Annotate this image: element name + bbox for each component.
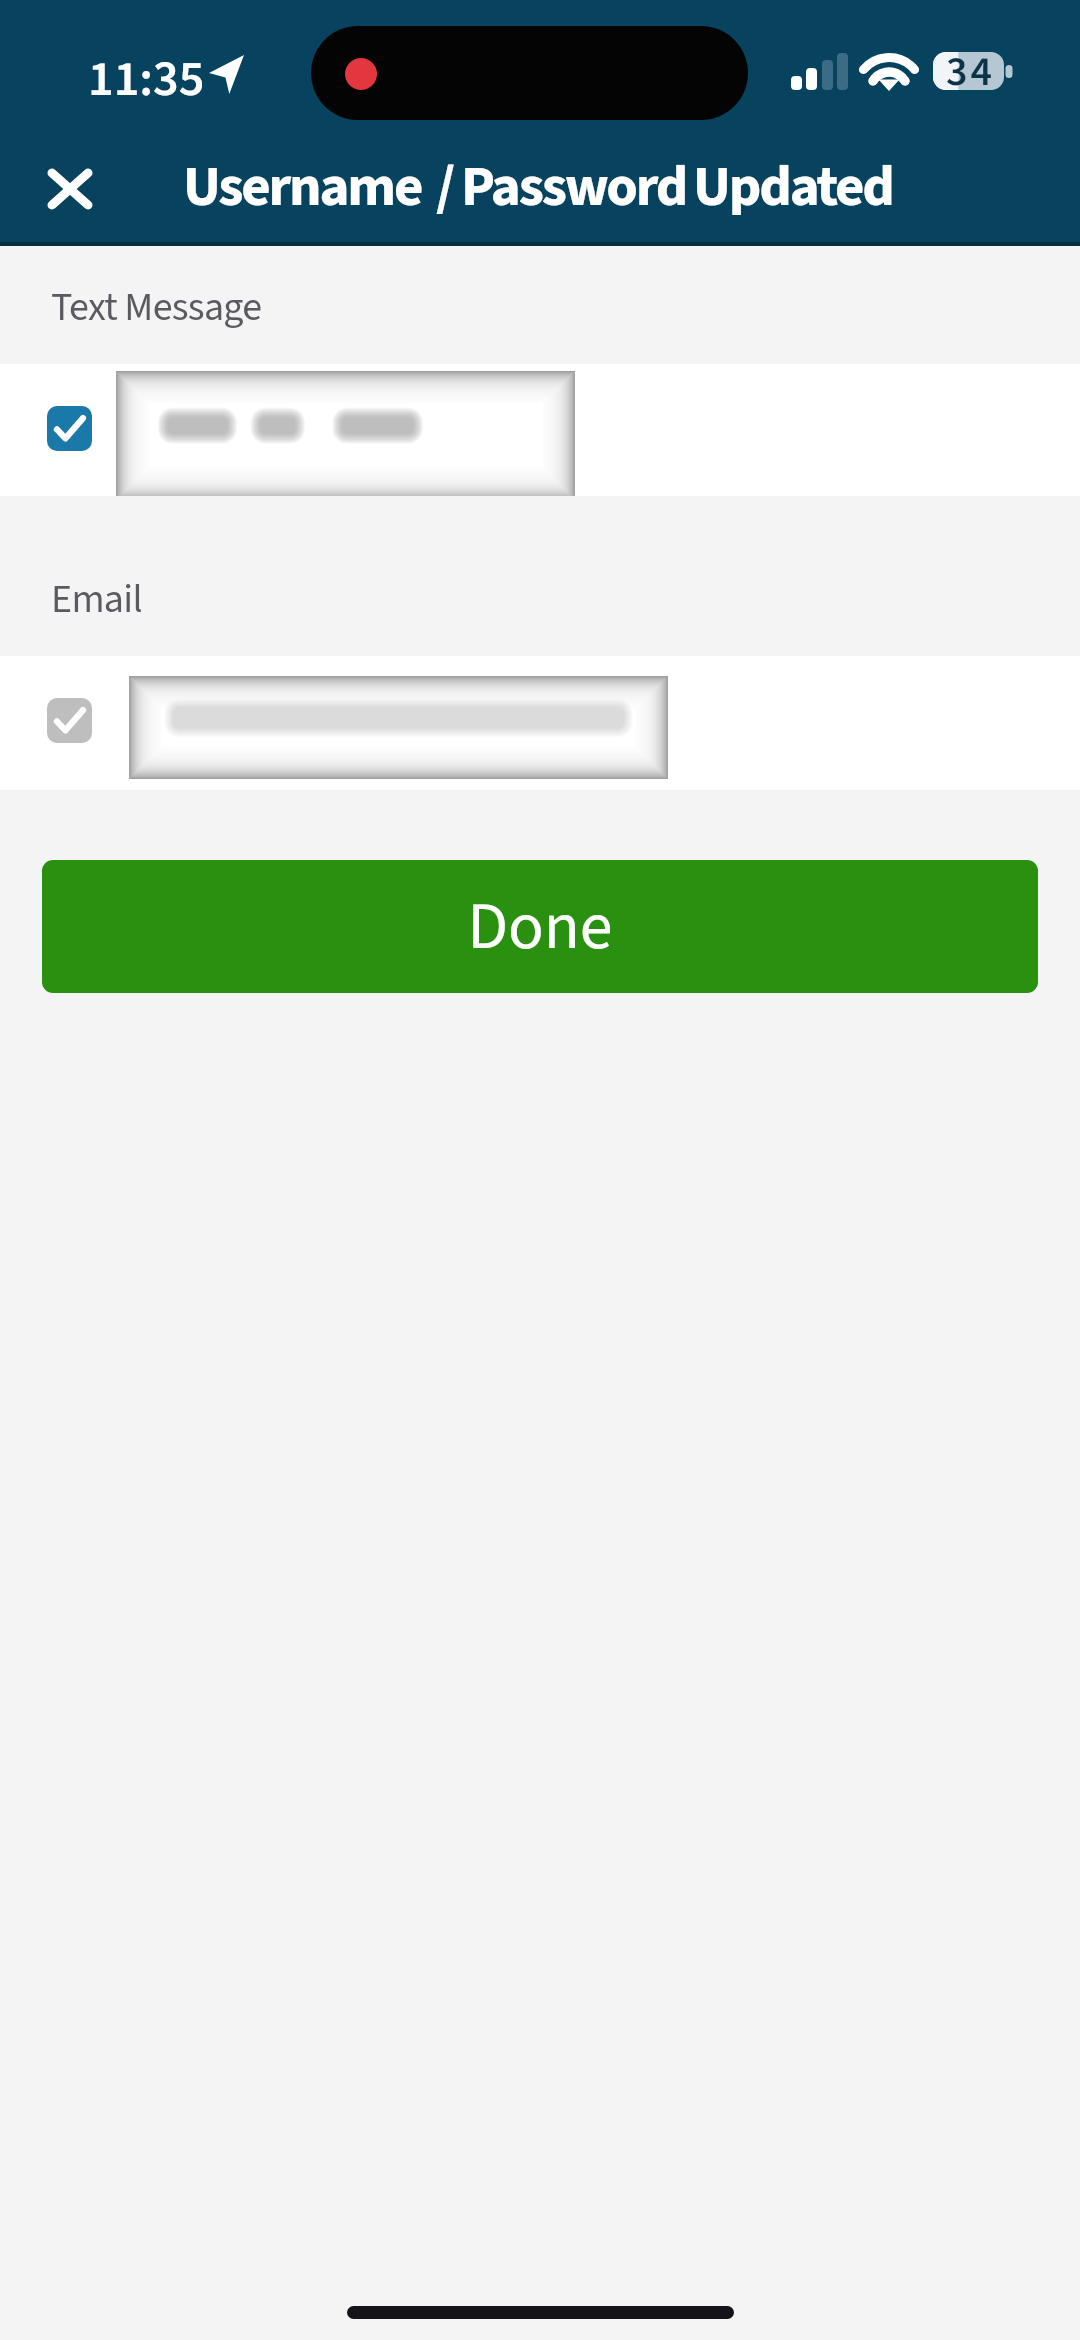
staticText: Password — [461, 147, 687, 228]
staticText: Username — [183, 147, 422, 228]
staticText: 34 — [946, 42, 996, 102]
button[interactable] — [0, 656, 1080, 790]
staticText: 11:35 — [88, 44, 205, 115]
staticText: Done — [467, 880, 613, 974]
staticText: Email — [51, 571, 142, 628]
staticText: Text Message — [51, 279, 262, 336]
button[interactable]: Close — [18, 139, 122, 239]
button[interactable]: Done — [42, 860, 1038, 993]
staticText: / — [436, 147, 454, 228]
button[interactable] — [0, 364, 1080, 496]
staticText: Updated — [693, 147, 893, 228]
